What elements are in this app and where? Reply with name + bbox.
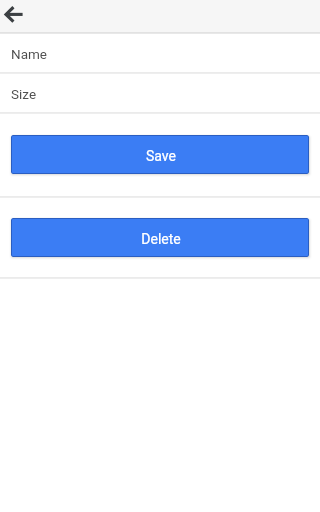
button[interactable]: Delete: [11, 218, 309, 257]
button[interactable]: Save: [11, 135, 309, 174]
staticText: Name: [11, 46, 47, 62]
button[interactable]: Size: [0, 73, 320, 112]
button[interactable]: Name: [0, 33, 320, 72]
staticText: Save: [146, 148, 176, 164]
button[interactable]: Navigate up: [0, 0, 30, 32]
staticText: Size: [11, 86, 37, 102]
staticText: Delete: [141, 231, 181, 247]
